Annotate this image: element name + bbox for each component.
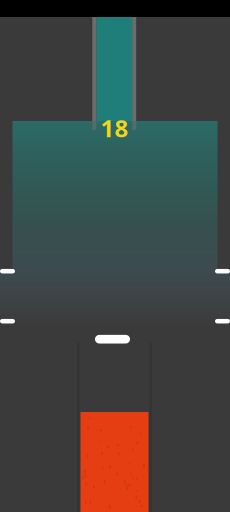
staticText: 18 [100, 112, 128, 144]
